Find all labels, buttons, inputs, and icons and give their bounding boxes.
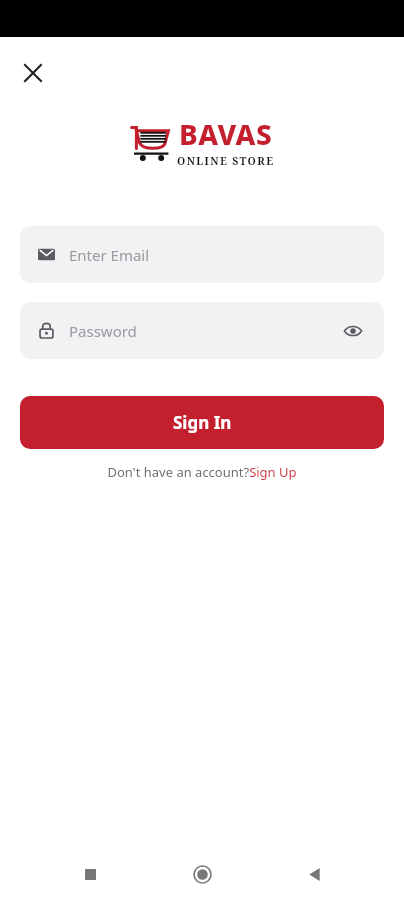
staticText: Password [69, 321, 340, 341]
staticText: Sign In [173, 411, 232, 434]
staticText: Enter Email [69, 245, 150, 265]
button[interactable]: Home [180, 852, 224, 896]
button[interactable]: Show password [340, 318, 366, 344]
staticText: ONLINE STORE [177, 154, 275, 168]
button[interactable]: Recents [68, 852, 112, 896]
button[interactable]: Password [20, 302, 384, 359]
staticText: Don't have an account?Sign Up [107, 463, 297, 481]
staticText: BAVAS [179, 115, 273, 153]
button[interactable]: Don't have an account?Sign Up [0, 463, 404, 481]
button[interactable]: Enter Email [20, 226, 384, 283]
button[interactable]: Back [292, 852, 336, 896]
button[interactable]: Sign In [20, 396, 384, 449]
button[interactable]: Close [15, 55, 51, 91]
